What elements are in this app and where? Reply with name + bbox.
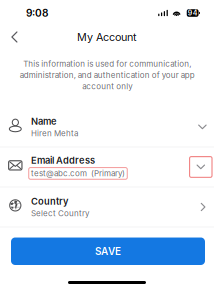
staticText: Email Address [31, 155, 95, 166]
staticText: Name [31, 116, 57, 127]
staticText: SAVE [95, 245, 121, 257]
staticText: This information is used for communicati… [19, 59, 194, 91]
staticText: Country [31, 196, 68, 207]
staticText: 94 [188, 9, 198, 17]
staticText: 9:08 [26, 7, 48, 19]
button[interactable]: Name [0, 107, 214, 147]
button[interactable]: Email Address [0, 147, 214, 187]
staticText: Hiren Mehta [31, 129, 78, 138]
button[interactable]: SAVE [11, 237, 205, 265]
staticText: test@abc.com (Primary) [31, 169, 125, 178]
staticText: My Account [77, 30, 137, 44]
staticText: Select Country [31, 209, 89, 218]
button[interactable]: Back [0, 27, 26, 47]
button[interactable]: Country [0, 187, 214, 227]
